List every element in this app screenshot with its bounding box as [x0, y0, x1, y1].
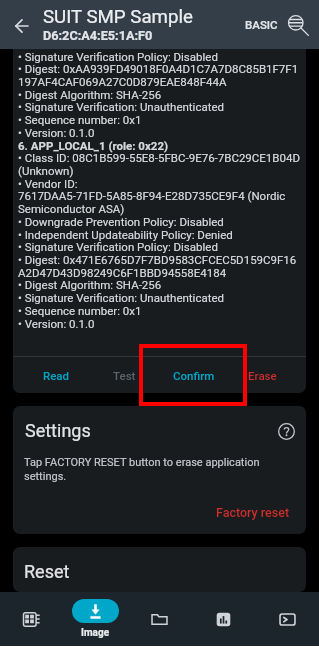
staticText: • Version: 0.1.0 — [18, 126, 95, 139]
staticText: • Sequence number: 0x1 — [18, 304, 142, 317]
staticText: A2D47D43D98249C6F1BBD94558E4184 — [18, 266, 227, 279]
staticText: • Version: 0.1.0 — [18, 317, 95, 330]
button[interactable]: Search — [281, 8, 315, 42]
button[interactable]: Shell — [255, 592, 319, 646]
staticText: • Downgrade Prevention Policy: Disabled — [18, 215, 224, 228]
staticText: Erase — [248, 369, 277, 382]
staticText: Reset — [24, 561, 70, 582]
staticText: Read — [43, 369, 70, 382]
staticText: Settings — [25, 420, 91, 441]
staticText: 197AF4CAF069A27C0D879EAE848F44A — [18, 75, 227, 88]
button[interactable]: Image — [63, 592, 127, 646]
button[interactable]: Back — [5, 8, 39, 42]
staticText: • Independent Updateability Policy: Deni… — [18, 228, 233, 241]
staticText: Factory reset — [216, 505, 290, 520]
staticText: SUIT SMP Sample — [43, 6, 193, 28]
staticText: • Vendor ID: — [18, 177, 78, 190]
staticText: • Digest Algorithm: SHA-256 — [18, 88, 162, 101]
staticText: • Class ID: 08C1B599-55E8-5FBC-9E76-7BC2… — [18, 151, 300, 164]
staticText: 6. APP_LOCAL_1 (role: 0x22) — [18, 139, 169, 152]
staticText: • Sequence number: 0x1 — [18, 113, 142, 126]
button[interactable]: BASIC — [242, 10, 281, 39]
button[interactable]: Files — [127, 592, 191, 646]
staticText: D6:2C:A4:E5:1A:F0 — [43, 28, 153, 43]
staticText: Image — [81, 627, 110, 639]
staticText: BASIC — [245, 18, 278, 31]
button[interactable]: Test — [90, 357, 159, 393]
button[interactable]: Erase — [228, 357, 297, 393]
staticText: • Signature Verification Policy: Disable… — [18, 50, 218, 63]
button[interactable]: Confirm — [159, 357, 228, 393]
staticText: 7617DAA5-71FD-5A85-8F94-E28D735CE9F4 (No… — [18, 189, 286, 202]
staticText: • Digest Algorithm: SHA-256 — [18, 278, 162, 291]
staticText: Tap FACTORY RESET button to erase applic… — [24, 456, 289, 483]
button[interactable]: Read — [22, 357, 90, 393]
staticText: • Digest: 0x471E6765D7F7BD9583CFCEC5D159… — [18, 253, 297, 266]
button[interactable]: Device — [0, 592, 63, 646]
staticText: Test — [113, 369, 136, 382]
button[interactable]: Factory reset — [201, 497, 306, 534]
staticText: • Signature Verification: Unauthenticate… — [18, 291, 225, 304]
staticText: • Signature Verification Policy: Disable… — [18, 240, 218, 253]
staticText: (Unknown) — [18, 164, 74, 177]
staticText: Confirm — [173, 369, 215, 382]
staticText: • Digest: 0xAA939FD49018F0A4D1C7A7D8C85B… — [18, 62, 299, 75]
staticText: Semiconductor ASA) — [18, 202, 125, 215]
button[interactable]: Stats — [191, 592, 255, 646]
button[interactable]: Help — [275, 420, 297, 442]
staticText: • Signature Verification: Unauthenticate… — [18, 100, 225, 113]
